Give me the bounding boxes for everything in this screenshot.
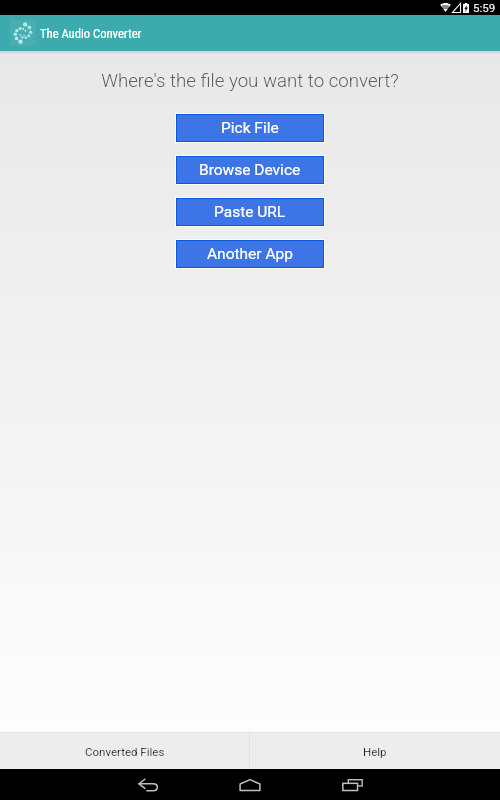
staticText: The Audio Converter	[40, 26, 142, 41]
staticText: 5:59	[473, 1, 496, 14]
staticText: Pick File	[221, 119, 279, 137]
button[interactable]: Help	[250, 733, 500, 769]
staticText: Another App	[207, 245, 293, 263]
button[interactable]: Recent apps	[318, 769, 386, 800]
button[interactable]: Converted Files	[0, 733, 249, 769]
button[interactable]: Pick File	[177, 115, 323, 141]
button[interactable]: Paste URL	[177, 199, 323, 225]
staticText: Browse Device	[199, 161, 301, 179]
staticText: Help	[363, 745, 387, 758]
staticText: Converted Files	[85, 745, 165, 758]
staticText: Where's the file you want to convert?	[0, 70, 500, 92]
button[interactable]: Another App	[177, 241, 323, 267]
button[interactable]: Browse Device	[177, 157, 323, 183]
button[interactable]: Home	[216, 769, 284, 800]
staticText: Paste URL	[214, 203, 286, 221]
button[interactable]: Back	[114, 769, 182, 800]
